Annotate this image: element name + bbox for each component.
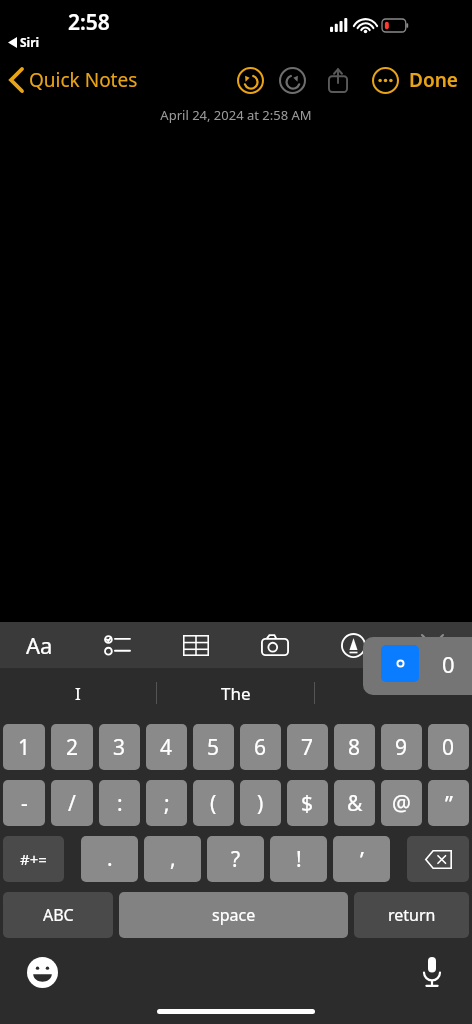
button[interactable]: I <box>0 668 156 718</box>
button[interactable]: Markup <box>314 622 393 668</box>
button[interactable]: Checklist <box>78 622 156 668</box>
staticText: ABC <box>43 904 74 926</box>
staticText: Siri <box>20 34 40 50</box>
button[interactable]: Share <box>313 58 363 102</box>
staticText: ; <box>164 789 170 818</box>
staticText: #+= <box>20 849 47 869</box>
staticText: $ <box>301 789 314 818</box>
staticText: April 24, 2024 at 2:58 AM <box>160 106 312 124</box>
button[interactable]: Emoji <box>20 952 64 992</box>
button[interactable]: return <box>354 892 469 938</box>
button[interactable]: & <box>334 780 375 826</box>
staticText: ” <box>445 788 453 818</box>
staticText: @ <box>392 789 411 818</box>
button[interactable]: More options <box>363 58 407 102</box>
staticText: : <box>117 789 123 818</box>
staticText: 1 <box>18 733 31 762</box>
staticText: Done <box>409 67 458 93</box>
staticText: . <box>107 844 113 873</box>
button[interactable]: ( <box>193 780 234 826</box>
staticText: ( <box>210 789 217 818</box>
button[interactable]: Camera <box>235 622 314 668</box>
button[interactable]: #+= <box>3 836 64 882</box>
staticText: - <box>21 789 28 818</box>
staticText: / <box>68 789 76 818</box>
button[interactable]: 0 <box>428 724 469 770</box>
staticText: 4 <box>160 733 173 762</box>
button[interactable]: $ <box>287 780 328 826</box>
button[interactable]: 3 <box>99 724 140 770</box>
staticText: ? <box>231 845 241 874</box>
staticText: & <box>347 789 363 818</box>
button[interactable]: Dictation <box>410 952 454 992</box>
staticText: 2:58 <box>68 8 110 37</box>
button[interactable]: Text format <box>0 622 78 668</box>
button[interactable]: Redo <box>271 59 313 101</box>
button[interactable]: ! <box>270 836 327 882</box>
staticText: return <box>388 904 436 926</box>
button[interactable]: 0 <box>429 645 467 682</box>
staticText: 2 <box>66 733 79 762</box>
staticText: The <box>221 682 251 705</box>
button[interactable]: : <box>99 780 140 826</box>
button[interactable]: 4 <box>146 724 187 770</box>
button[interactable]: - <box>3 780 45 826</box>
button[interactable]: ) <box>240 780 281 826</box>
button[interactable]: 2 <box>51 724 93 770</box>
staticText: 7 <box>301 733 314 762</box>
staticText: 9 <box>395 733 408 762</box>
button[interactable]: / <box>51 780 93 826</box>
button[interactable]: space <box>119 892 348 938</box>
button[interactable]: 5 <box>193 724 234 770</box>
button[interactable]: 7 <box>287 724 328 770</box>
button[interactable]: Table <box>156 622 235 668</box>
staticText: 8 <box>348 733 361 762</box>
button[interactable]: , <box>144 836 201 882</box>
button[interactable]: Quick Notes <box>0 63 146 97</box>
button[interactable]: 9 <box>381 724 422 770</box>
staticText: 5 <box>207 733 220 762</box>
button[interactable]: 1 <box>3 724 45 770</box>
button[interactable]: The <box>157 668 314 718</box>
staticText: I <box>75 682 81 705</box>
staticText: ) <box>257 789 264 818</box>
button[interactable]: Done <box>407 61 472 99</box>
button[interactable]: 8 <box>334 724 375 770</box>
staticText: ’ <box>360 844 364 874</box>
button[interactable]: ’ <box>333 836 390 882</box>
button[interactable]: Close <box>393 622 472 668</box>
staticText: 3 <box>113 733 126 762</box>
staticText: , <box>170 844 176 873</box>
staticText: 0 <box>442 733 455 762</box>
staticText: 0 <box>442 649 455 679</box>
button[interactable]: ; <box>146 780 187 826</box>
staticText: 6 <box>254 733 267 762</box>
button[interactable]: @ <box>381 780 422 826</box>
button[interactable]: . <box>81 836 138 882</box>
staticText: Aa <box>26 630 53 660</box>
button[interactable]: Delete <box>407 836 469 882</box>
staticText: ! <box>296 845 302 874</box>
button[interactable]: ABC <box>3 892 113 938</box>
button[interactable] <box>315 668 472 718</box>
button[interactable]: 6 <box>240 724 281 770</box>
staticText: space <box>212 904 256 926</box>
staticText: Quick Notes <box>29 67 138 93</box>
button[interactable]: ” <box>428 780 469 826</box>
button[interactable]: Undo <box>229 59 271 101</box>
button[interactable]: Degree symbol <box>381 645 419 682</box>
button[interactable]: ? <box>207 836 264 882</box>
